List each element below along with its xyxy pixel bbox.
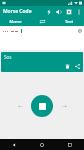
button[interactable]: Morse [0, 17, 31, 26]
button[interactable]: Home [28, 139, 56, 150]
button[interactable]: Share [74, 63, 81, 70]
staticText: Morse [9, 19, 22, 24]
button[interactable]: More options [74, 7, 83, 16]
staticText: Text [65, 19, 73, 24]
button[interactable]: Back [0, 139, 28, 150]
button[interactable]: Delete [64, 63, 71, 70]
button[interactable]: Text [53, 17, 84, 26]
button[interactable]: Settings [64, 7, 73, 16]
button[interactable]: Clear [77, 28, 82, 33]
button[interactable]: Clear [0, 26, 84, 50]
button[interactable]: Recents [56, 139, 84, 150]
button[interactable]: Slower [15, 101, 25, 111]
button[interactable]: Sound [54, 7, 63, 16]
button[interactable]: Flashlight [44, 7, 53, 16]
button[interactable]: Sos [1, 52, 83, 72]
button[interactable]: Swap languages [31, 17, 53, 26]
button[interactable]: Stop [31, 95, 53, 117]
staticText: Morse Code [3, 8, 32, 15]
button[interactable]: Faster [59, 101, 69, 111]
staticText: Sos [4, 54, 12, 60]
